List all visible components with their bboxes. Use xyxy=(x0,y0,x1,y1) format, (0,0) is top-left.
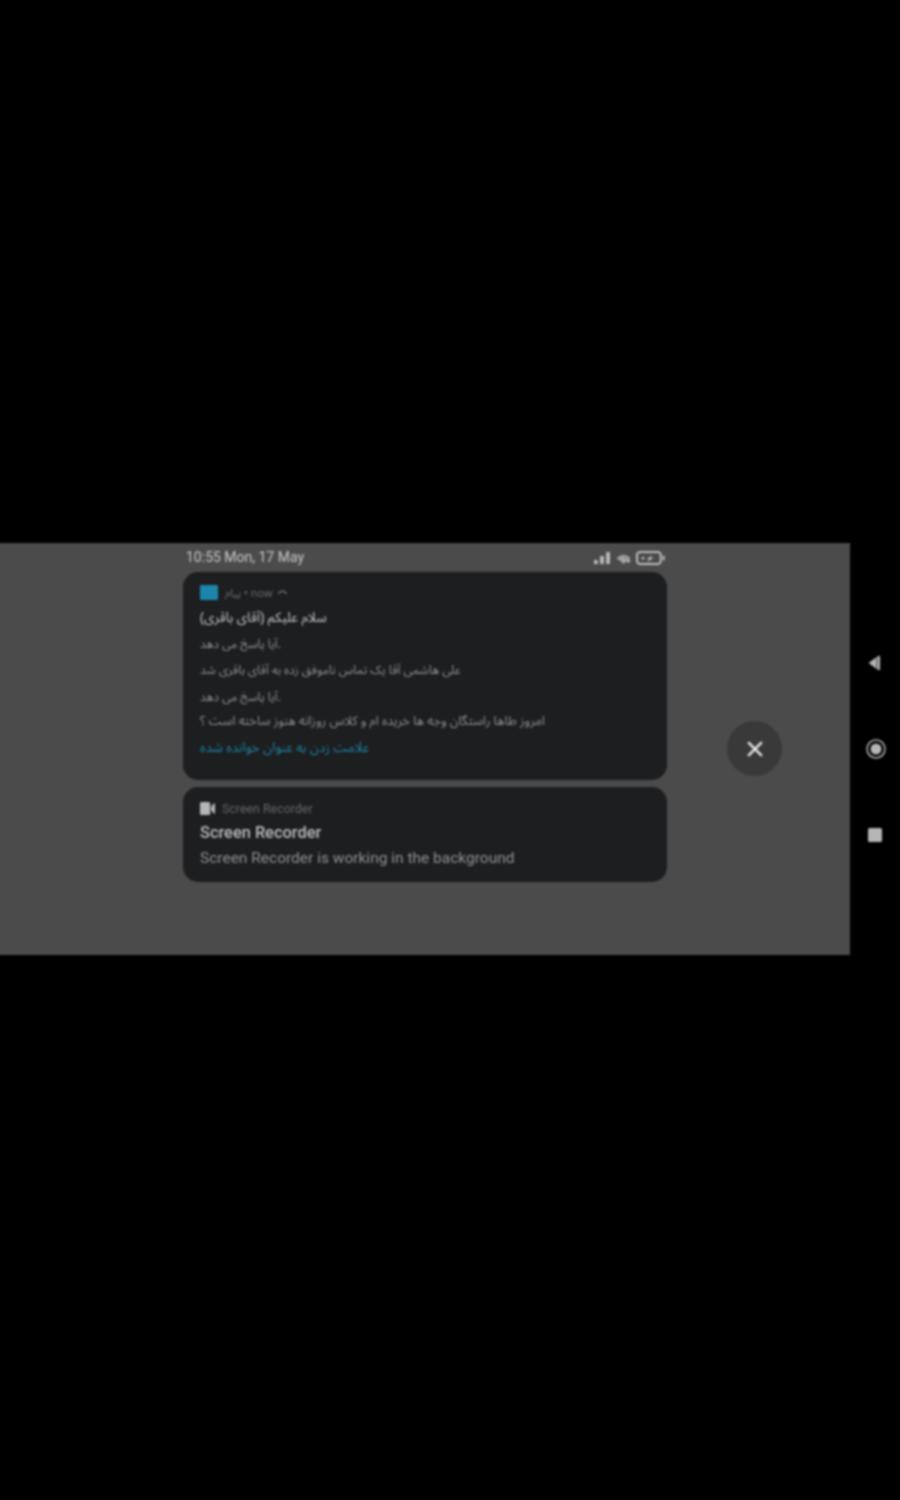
staticText: Screen Recorder is working in the backgr… xyxy=(200,849,515,867)
staticText: علی هاشمی آقا یک تماس ناموفق زده به آقای… xyxy=(200,661,461,677)
button[interactable]: علامت زدن به عنوان خوانده شده xyxy=(200,738,370,756)
button[interactable]: Home xyxy=(859,732,893,766)
staticText: Screen Recorder xyxy=(200,823,322,842)
button[interactable]: پیام • now xyxy=(183,572,667,780)
staticText: Screen Recorder xyxy=(222,801,313,816)
button[interactable]: Back xyxy=(857,646,891,680)
button[interactable]: Recent apps xyxy=(858,818,892,852)
button[interactable]: Screen Recorder xyxy=(183,787,667,882)
staticText: سلام علیکم (آقای باقری) xyxy=(200,608,327,626)
staticText: 10:55 Mon, 17 May xyxy=(186,549,305,565)
staticText: آیا پاسخ می دهد. xyxy=(200,688,281,704)
staticText: پیام • now xyxy=(225,585,273,600)
staticText: امروز طاها راستگان وجه ها خریده ام و کلا… xyxy=(200,712,545,729)
button[interactable]: Clear all notifications xyxy=(727,721,782,776)
staticText: آیا پاسخ می دهد. xyxy=(200,635,281,651)
